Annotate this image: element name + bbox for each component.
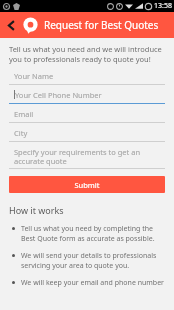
staticText: City bbox=[14, 128, 28, 138]
button[interactable]: City bbox=[9, 128, 165, 142]
staticText: Specify your requirements to get an accu… bbox=[14, 147, 165, 167]
staticText: Your Cell Phone Number bbox=[15, 90, 102, 100]
staticText: Request for Best Quotes bbox=[44, 18, 159, 32]
button[interactable]: Submit bbox=[9, 176, 165, 193]
staticText: Tell us what you need by completing the … bbox=[21, 224, 165, 244]
button[interactable]: Back bbox=[0, 12, 22, 38]
staticText: We will send your details to professiona… bbox=[21, 251, 165, 271]
button[interactable]: Specify your requirements to get an accu… bbox=[9, 147, 165, 169]
staticText: Email bbox=[14, 109, 34, 119]
button[interactable]: Your Cell Phone Number bbox=[9, 90, 165, 104]
staticText: 13:58 bbox=[154, 1, 172, 11]
staticText: Submit bbox=[74, 180, 100, 190]
button[interactable]: Email bbox=[9, 109, 165, 123]
staticText: Tell us what you need and we will introd… bbox=[9, 44, 165, 64]
staticText: We will keep your email and phone number bbox=[21, 278, 165, 288]
staticText: Your Name bbox=[14, 71, 54, 81]
staticText: How it works bbox=[9, 204, 64, 216]
button[interactable]: Your Name bbox=[9, 71, 165, 85]
